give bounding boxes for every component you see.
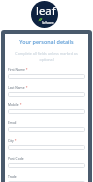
button[interactable]: Mobile: [8, 102, 85, 114]
staticText: *: [19, 102, 22, 106]
other: Leaf Software logo: [31, 1, 58, 28]
staticText: City: [8, 138, 14, 142]
staticText: Mobile: [8, 102, 19, 106]
staticText: First Name: [8, 67, 25, 71]
staticText: *: [25, 85, 28, 89]
button[interactable]: Last Name: [8, 85, 85, 97]
staticText: Your personal details: [5, 38, 88, 45]
staticText: Last Name: [8, 85, 25, 89]
staticText: Email: [8, 120, 17, 124]
staticText: leaf: [36, 3, 56, 19]
staticText: Trade: [8, 174, 17, 178]
button[interactable]: Post Code: [8, 156, 85, 168]
button[interactable]: City: [8, 138, 85, 150]
staticText: Post Code: [8, 156, 24, 160]
button[interactable]: Email: [8, 120, 85, 132]
staticText: Software: [42, 21, 54, 25]
staticText: *: [14, 138, 17, 142]
staticText: *: [25, 67, 28, 71]
button[interactable]: First Name: [8, 67, 85, 79]
staticText: Complete all fields unless marked as opt…: [5, 51, 88, 63]
button[interactable]: Trade: [8, 174, 85, 182]
